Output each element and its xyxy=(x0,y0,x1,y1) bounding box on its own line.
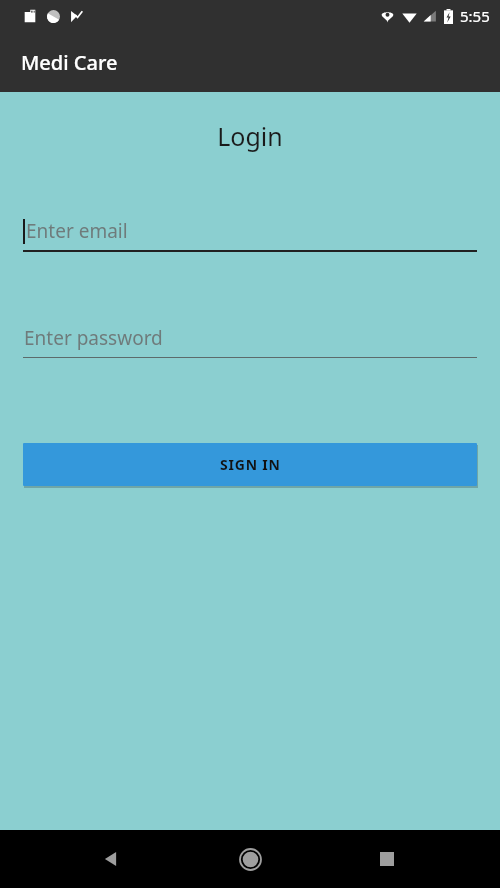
button[interactable]: Home xyxy=(232,841,268,877)
button[interactable]: Enter password xyxy=(23,322,477,358)
button[interactable]: Recent apps xyxy=(370,842,404,876)
staticText: SIGN IN xyxy=(220,455,281,474)
staticText: 5:55 xyxy=(460,6,490,26)
button[interactable]: Back xyxy=(94,842,128,876)
staticText: Medi Care xyxy=(21,49,118,76)
staticText: Login xyxy=(0,119,500,153)
button[interactable]: SIGN IN xyxy=(23,443,477,486)
button[interactable]: Enter email xyxy=(23,215,477,252)
staticText: Enter email xyxy=(26,218,128,244)
staticText: Enter password xyxy=(24,325,163,351)
